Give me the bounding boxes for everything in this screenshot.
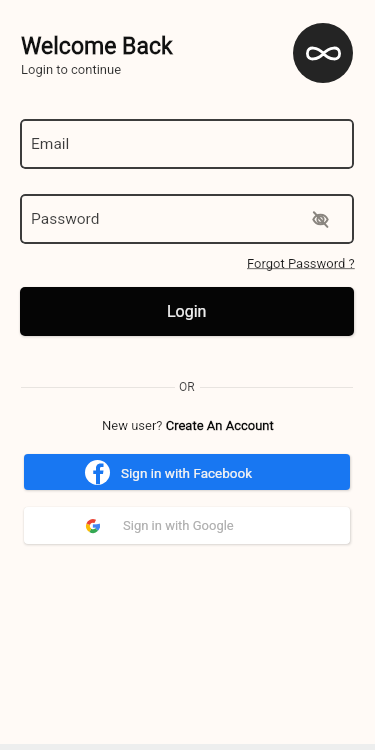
button[interactable]: Password — [20, 194, 354, 244]
staticText: Login — [167, 302, 207, 321]
staticText: OR — [179, 380, 195, 394]
button[interactable]: Email — [20, 119, 354, 169]
button[interactable]: Sign in with Google — [24, 507, 350, 544]
staticText: New user? Create An Account — [102, 418, 274, 433]
staticText: Password — [31, 210, 100, 228]
staticText: Login to continue — [21, 62, 122, 77]
staticText: Sign in with Facebook — [121, 465, 253, 481]
button[interactable]: App logo — [293, 23, 353, 83]
button[interactable]: Toggle password visibility — [309, 208, 331, 230]
button[interactable]: Login — [20, 287, 354, 336]
staticText: Forgot Password ? — [247, 256, 355, 271]
button[interactable]: Forgot Password ? — [247, 256, 355, 271]
staticText: Welcome Back — [21, 33, 173, 60]
staticText: Email — [31, 135, 70, 153]
staticText: Sign in with Google — [123, 518, 234, 533]
button[interactable]: New user? Create An Account — [102, 418, 274, 433]
button[interactable]: Sign in with Facebook — [24, 454, 350, 490]
